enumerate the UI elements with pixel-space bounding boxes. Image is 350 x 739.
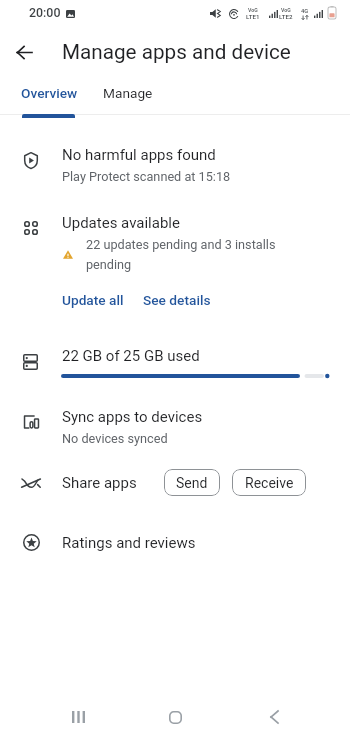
button[interactable]: Send xyxy=(164,469,220,496)
button[interactable]: See details xyxy=(143,290,211,310)
staticText: Overview xyxy=(21,85,78,101)
staticText: Sync apps to devices xyxy=(62,408,203,426)
staticText: Manage apps and device xyxy=(62,40,291,64)
staticText: 22 updates pending and 3 installs pendin… xyxy=(86,237,283,272)
staticText: Share apps xyxy=(62,474,137,492)
button[interactable]: Back xyxy=(251,694,297,739)
staticText: VoG xyxy=(248,7,258,13)
staticText: Updates available xyxy=(62,214,180,232)
staticText: Update all xyxy=(62,292,124,308)
staticText: LTE1 xyxy=(246,13,260,20)
button[interactable]: Receive xyxy=(232,469,306,496)
button[interactable]: Home xyxy=(152,694,198,739)
staticText: VoG xyxy=(281,7,291,13)
button[interactable]: Update all xyxy=(62,290,124,310)
staticText: Receive xyxy=(245,475,294,491)
staticText: Ratings and reviews xyxy=(62,534,196,552)
button[interactable]: Overview xyxy=(14,75,85,111)
staticText: LTE2 xyxy=(279,13,293,20)
staticText: Send xyxy=(176,475,208,491)
staticText: 4G xyxy=(301,8,309,15)
staticText: No devices synced xyxy=(62,431,168,446)
staticText: 22 GB of 25 GB used xyxy=(62,347,200,365)
staticText: See details xyxy=(143,292,211,308)
staticText: Play Protect scanned at 15:18 xyxy=(62,169,231,184)
button[interactable]: Back xyxy=(4,32,44,72)
button[interactable]: Recent apps xyxy=(55,694,101,739)
staticText: Manage xyxy=(103,85,153,101)
staticText: No harmful apps found xyxy=(62,146,216,164)
staticText: 20:00 xyxy=(29,5,61,20)
button[interactable]: Manage xyxy=(94,75,162,111)
